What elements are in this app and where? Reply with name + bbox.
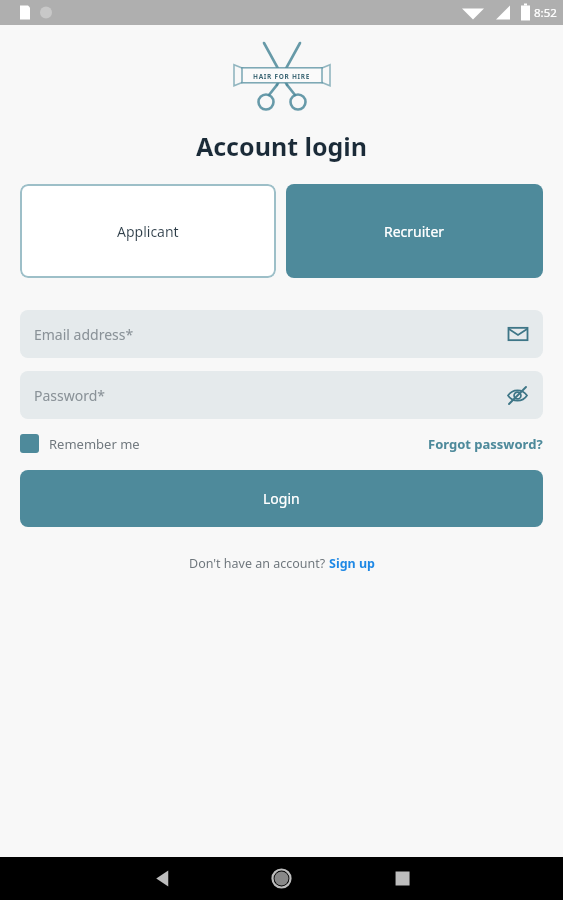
staticText: Remember me: [49, 435, 140, 453]
staticText: Don't have an account?: [189, 555, 329, 572]
button[interactable]: Recruiter: [286, 184, 543, 278]
staticText: Password*: [34, 386, 106, 405]
staticText: HAIR FOR HIRE: [253, 72, 311, 81]
staticText: Forgot password?: [428, 435, 543, 453]
staticText: Email address*: [34, 325, 134, 344]
staticText: Login: [263, 489, 300, 508]
staticText: Recruiter: [384, 222, 445, 241]
staticText: Sign up: [329, 555, 375, 572]
other: Email: [507, 323, 529, 345]
staticText: Account login: [0, 129, 563, 163]
button[interactable]: Remember me: [20, 434, 140, 453]
button[interactable]: Email address*: [20, 310, 543, 358]
button[interactable]: Login: [20, 470, 543, 527]
staticText: Applicant: [117, 222, 179, 241]
button[interactable]: Sign up: [329, 555, 375, 572]
other: Show password: [506, 384, 529, 407]
button[interactable]: Password*: [20, 371, 543, 419]
button[interactable]: Forgot password?: [428, 435, 543, 453]
staticText: 8:52: [534, 5, 557, 21]
button[interactable]: Applicant: [20, 184, 276, 278]
